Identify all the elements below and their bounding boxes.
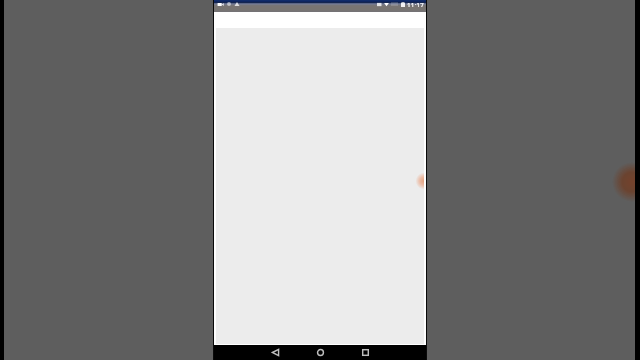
button[interactable]: Recent apps	[357, 346, 373, 358]
button[interactable]: Home	[312, 346, 328, 358]
staticText: 11:17	[407, 1, 424, 7]
button[interactable]: Back	[267, 346, 283, 358]
